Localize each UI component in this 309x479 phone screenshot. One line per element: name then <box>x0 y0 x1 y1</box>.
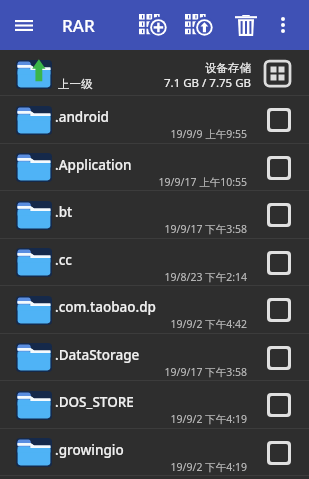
button[interactable]: Select .com.taobao.dp <box>261 286 297 334</box>
staticText: 19/9/17 下午3:58 <box>55 222 247 236</box>
button[interactable]: Select .DOS_STORE <box>261 381 297 429</box>
staticText: 19/9/2 下午4:42 <box>55 317 247 331</box>
staticText: .DataStorage <box>55 346 140 364</box>
staticText: 19/9/17 下午3:58 <box>55 365 247 379</box>
button[interactable]: Grid view <box>260 50 295 96</box>
button[interactable]: .cc <box>0 239 309 286</box>
staticText: 19/9/2 下午4:19 <box>55 412 247 426</box>
button[interactable]: Add to archive <box>130 0 176 50</box>
button[interactable]: Select .bt <box>261 191 297 239</box>
button[interactable]: .android <box>0 96 309 144</box>
button[interactable]: Select .DataStorage <box>261 334 297 381</box>
button[interactable]: Menu <box>0 0 47 50</box>
staticText: 19/9/2 下午4:19 <box>55 460 247 474</box>
button[interactable]: Extract archive <box>176 0 222 50</box>
button[interactable]: .Application <box>0 144 309 191</box>
button[interactable]: Select .growingio <box>261 429 297 476</box>
staticText: RAR <box>62 14 95 37</box>
button[interactable]: .growingio <box>0 429 309 476</box>
button[interactable]: Select .cc <box>261 239 297 286</box>
button[interactable]: Select .android <box>261 96 297 144</box>
staticText: 19/9/9 上午9:55 <box>55 127 247 141</box>
button[interactable]: .DataStorage <box>0 334 309 381</box>
staticText: 7.1 GB / 7.75 GB <box>164 75 251 91</box>
staticText: .DOS_STORE <box>55 393 134 411</box>
button[interactable]: .DOS_STORE <box>0 381 309 429</box>
button[interactable]: .bt <box>0 191 309 239</box>
button[interactable]: Delete <box>222 0 269 50</box>
staticText: .bt <box>55 203 73 221</box>
staticText: 19/9/17 上午10:55 <box>55 175 247 189</box>
staticText: .android <box>55 108 109 126</box>
staticText: 上一级 <box>58 77 93 91</box>
button[interactable]: 上一级 <box>0 50 309 96</box>
button[interactable]: More options <box>269 0 296 50</box>
button[interactable]: Select .Application <box>261 144 297 191</box>
staticText: .com.taobao.dp <box>55 298 156 316</box>
staticText: .Application <box>55 156 132 174</box>
staticText: 19/8/23 下午2:14 <box>55 270 247 284</box>
staticText: 设备存储 <box>205 61 251 75</box>
staticText: .cc <box>55 251 72 269</box>
button[interactable]: .com.taobao.dp <box>0 286 309 334</box>
staticText: .growingio <box>55 441 124 459</box>
